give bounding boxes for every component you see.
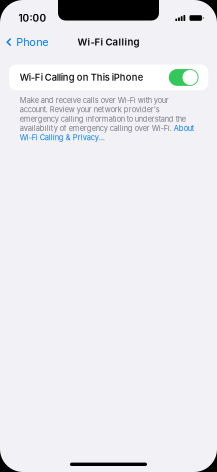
- staticText: Phone: [16, 35, 48, 49]
- staticText: Wi-Fi Calling & Privacy...: [20, 133, 105, 142]
- staticText: availability of emergency calling over W…: [20, 124, 174, 133]
- staticText: emergency calling information to underst…: [20, 114, 186, 123]
- staticText: Make and receive calls over Wi-Fi with y…: [20, 96, 169, 105]
- button[interactable]: Wi-Fi Calling & Privacy...: [20, 133, 105, 142]
- button[interactable]: availability of emergency calling over W…: [20, 124, 194, 133]
- staticText: 10:00: [18, 12, 46, 24]
- staticText: Wi-Fi Calling: [77, 36, 139, 48]
- staticText: account. Review your network provider's: [20, 105, 160, 114]
- staticText: Wi-Fi Calling on This iPhone: [20, 72, 143, 83]
- staticText: About: [174, 124, 194, 133]
- button[interactable]: Wi-Fi Calling on This iPhone: [9, 65, 208, 90]
- button[interactable]: Phone: [0, 32, 54, 52]
